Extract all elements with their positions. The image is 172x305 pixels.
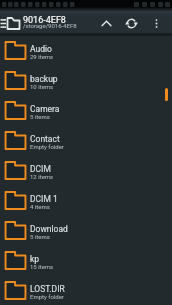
staticText: 15 items	[30, 263, 54, 270]
button[interactable]: Refresh	[119, 11, 144, 36]
staticText: Camera	[30, 104, 60, 114]
button[interactable]: Collapse	[94, 11, 119, 36]
button[interactable]: More options	[144, 11, 169, 36]
button[interactable]: kp	[0, 247, 172, 277]
button[interactable]: Audio	[0, 37, 172, 67]
staticText: Empty folder	[30, 143, 64, 150]
staticText: Download	[30, 224, 68, 234]
staticText: 5 items	[30, 113, 50, 120]
staticText: 4 items	[30, 203, 50, 210]
button[interactable]: Download	[0, 217, 172, 247]
staticText: 12 items	[30, 173, 54, 180]
staticText: Contact	[30, 134, 60, 144]
staticText: kp	[30, 254, 40, 264]
staticText: 29 items	[30, 53, 54, 60]
staticText: 10 items	[30, 83, 54, 90]
button[interactable]: Navigate up	[0, 11, 21, 36]
button[interactable]: DCIM 1	[0, 187, 172, 217]
staticText: /storage/9016-4EF8	[23, 22, 77, 29]
staticText: 5 items	[30, 233, 50, 240]
staticText: Empty folder	[30, 293, 64, 300]
staticText: Audio	[30, 44, 52, 54]
staticText: backup	[30, 74, 58, 84]
staticText: LOST.DIR	[30, 284, 65, 294]
staticText: DCIM 1	[30, 194, 58, 204]
button[interactable]: Camera	[0, 97, 172, 127]
button[interactable]: Contact	[0, 127, 172, 157]
button[interactable]: LOST.DIR	[0, 277, 172, 305]
button[interactable]: DCIM	[0, 157, 172, 187]
staticText: 9016-4EF8	[23, 15, 66, 26]
staticText: DCIM	[30, 164, 51, 174]
button[interactable]: backup	[0, 67, 172, 97]
